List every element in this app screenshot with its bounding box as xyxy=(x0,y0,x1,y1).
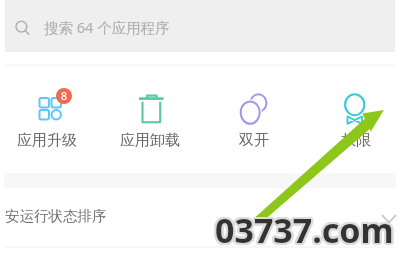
staticText: 03737.com xyxy=(213,206,392,252)
other: Search xyxy=(15,20,32,37)
staticText: 03737.com xyxy=(214,206,393,252)
staticText: 03737.com xyxy=(215,207,394,253)
button[interactable]: 8 xyxy=(3,86,91,152)
staticText: 03737.com xyxy=(216,207,395,253)
staticText: 03737.com xyxy=(215,207,394,253)
staticText: 03737.com xyxy=(216,206,395,252)
staticText: 03737.com xyxy=(214,205,393,251)
staticText: 03737.com xyxy=(216,205,395,251)
button[interactable]: 应用卸载 xyxy=(106,86,194,152)
staticText: 03737.com xyxy=(215,205,394,251)
staticText: 应用卸载 xyxy=(120,131,180,150)
button[interactable]: 权限 xyxy=(312,86,400,152)
staticText: 03737.com xyxy=(215,208,394,254)
staticText: 03737.com xyxy=(216,209,395,255)
staticText: 03737.com xyxy=(217,206,396,252)
staticText: 权限 xyxy=(341,131,371,150)
staticText: 8 xyxy=(61,89,68,103)
button[interactable]: 安运行状态排序 xyxy=(0,190,400,246)
other: Expand sort options xyxy=(381,211,397,227)
staticText: 03737.com xyxy=(214,207,393,253)
staticText: 双开 xyxy=(239,131,269,150)
staticText: 搜索 64 个应用程序 xyxy=(44,17,170,37)
staticText: 03737.com xyxy=(215,206,394,252)
staticText: 安运行状态排序 xyxy=(5,207,107,225)
staticText: 03737.com xyxy=(215,209,394,255)
staticText: 03737.com xyxy=(216,208,395,254)
button[interactable]: Search xyxy=(5,0,395,52)
button[interactable]: 双开 xyxy=(210,86,298,152)
staticText: 03737.com xyxy=(214,208,393,254)
staticText: 03737.com xyxy=(217,207,396,253)
staticText: 03737.com xyxy=(214,209,393,255)
staticText: 03737.com xyxy=(217,208,396,254)
staticText: 03737.com xyxy=(213,208,392,254)
staticText: 03737.com xyxy=(213,207,392,253)
staticText: 应用升级 xyxy=(17,131,77,150)
